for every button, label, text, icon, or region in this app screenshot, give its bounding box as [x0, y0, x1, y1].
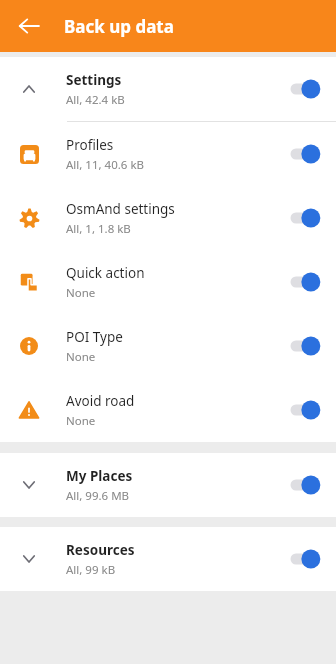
- button[interactable]: Toggle: [282, 544, 326, 574]
- staticText: All, 99 kB: [66, 562, 116, 578]
- button[interactable]: Toggle: [282, 74, 326, 104]
- button[interactable]: Toggle: [282, 470, 326, 500]
- staticText: All, 99.6 MB: [66, 488, 130, 504]
- staticText: All, 42.4 kB: [66, 92, 125, 108]
- button[interactable]: OsmAnd settings: [0, 186, 336, 250]
- button[interactable]: My Places: [0, 453, 336, 517]
- staticText: None: [66, 285, 96, 301]
- staticText: Back up data: [64, 15, 174, 38]
- button[interactable]: POI Type: [0, 314, 336, 378]
- staticText: POI Type: [66, 328, 123, 346]
- staticText: My Places: [66, 467, 133, 485]
- staticText: All, 1, 1.8 kB: [66, 221, 131, 237]
- button[interactable]: Profiles: [0, 122, 336, 186]
- button[interactable]: Toggle: [282, 395, 326, 425]
- button[interactable]: Toggle: [282, 267, 326, 297]
- staticText: All, 11, 40.6 kB: [66, 157, 145, 173]
- button[interactable]: Avoid road: [0, 378, 336, 442]
- staticText: OsmAnd settings: [66, 200, 175, 218]
- button[interactable]: Settings: [0, 57, 336, 121]
- staticText: None: [66, 413, 96, 429]
- button[interactable]: Resources: [0, 527, 336, 591]
- staticText: Resources: [66, 541, 135, 559]
- staticText: Profiles: [66, 136, 114, 154]
- staticText: Settings: [66, 71, 122, 89]
- button[interactable]: Quick action: [0, 250, 336, 314]
- button[interactable]: Toggle: [282, 139, 326, 169]
- staticText: None: [66, 349, 96, 365]
- staticText: Quick action: [66, 264, 145, 282]
- button[interactable]: Toggle: [282, 331, 326, 361]
- button[interactable]: Back: [10, 7, 48, 45]
- staticText: Avoid road: [66, 392, 135, 410]
- button[interactable]: Toggle: [282, 203, 326, 233]
